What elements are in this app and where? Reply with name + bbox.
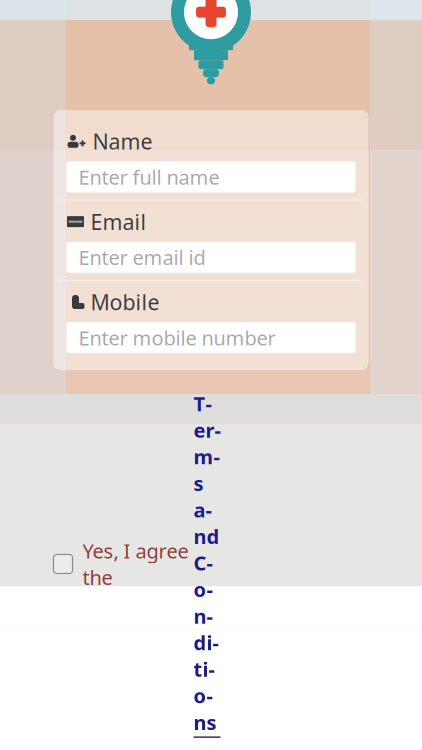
button[interactable]: Enter mobile number xyxy=(66,322,355,353)
button[interactable]: Enter full name xyxy=(66,161,355,192)
staticText: Name xyxy=(92,127,152,155)
staticText: Terms and Conditions xyxy=(193,390,220,735)
button[interactable]: Yes, I agree the xyxy=(53,390,368,738)
staticText: Email xyxy=(90,207,146,236)
staticText: Mobile xyxy=(90,288,159,316)
button[interactable]: Enter email id xyxy=(66,242,355,273)
staticText: Enter full name xyxy=(78,164,219,190)
staticText: Enter email id xyxy=(78,244,205,271)
staticText: Yes, I agree the xyxy=(82,537,188,590)
staticText: Enter mobile number xyxy=(78,324,275,351)
